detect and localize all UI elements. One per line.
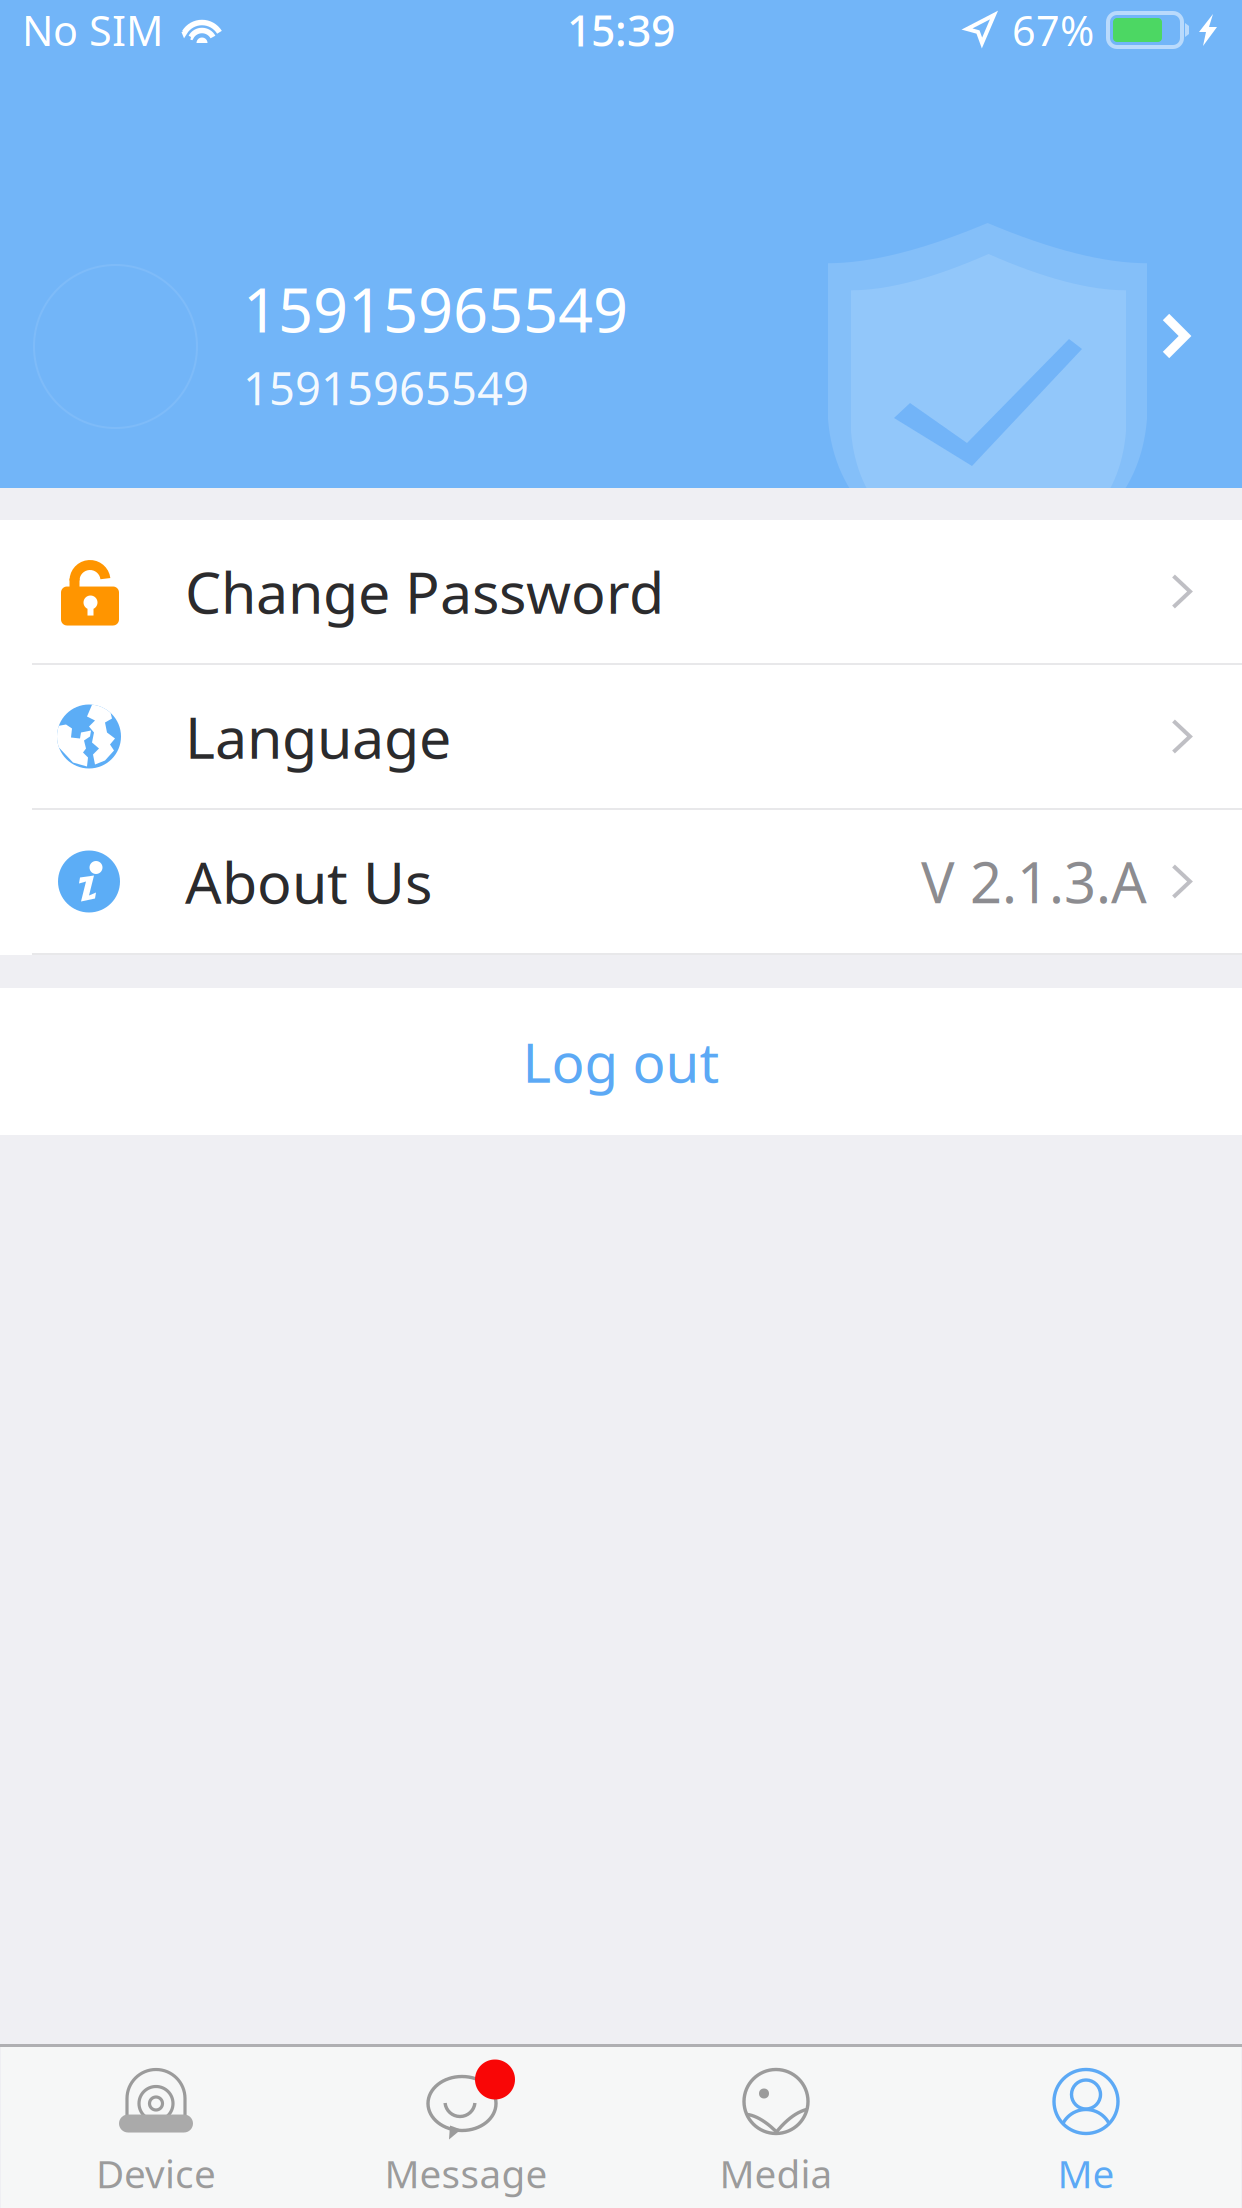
button[interactable]: Language <box>0 665 1242 810</box>
staticText: No SIM <box>22 3 163 57</box>
staticText: Me <box>1057 2147 1114 2199</box>
button[interactable]: About Us <box>0 810 1242 955</box>
staticText: 15:39 <box>567 2 675 58</box>
staticText: Language <box>185 698 451 774</box>
button[interactable]: Change Password <box>0 520 1242 665</box>
staticText: 15915965549 <box>243 357 529 418</box>
button[interactable]: Me <box>931 2045 1241 2208</box>
staticText: Message <box>384 2147 547 2199</box>
button[interactable]: Log out <box>0 988 1242 1135</box>
button[interactable]: Message <box>311 2045 621 2208</box>
staticText: About Us <box>185 843 432 919</box>
staticText: 15915965549 <box>243 268 628 349</box>
staticText: Device <box>96 2147 216 2199</box>
button[interactable]: Device <box>1 2045 311 2208</box>
staticText: 67% <box>1012 3 1094 57</box>
staticText: Media <box>719 2147 832 2199</box>
staticText: Log out <box>522 1025 719 1098</box>
button[interactable]: Media <box>621 2045 931 2208</box>
staticText: V 2.1.3.A <box>921 844 1147 919</box>
button[interactable]: Account 15915965549 <box>0 60 1242 488</box>
staticText: Change Password <box>185 553 664 629</box>
